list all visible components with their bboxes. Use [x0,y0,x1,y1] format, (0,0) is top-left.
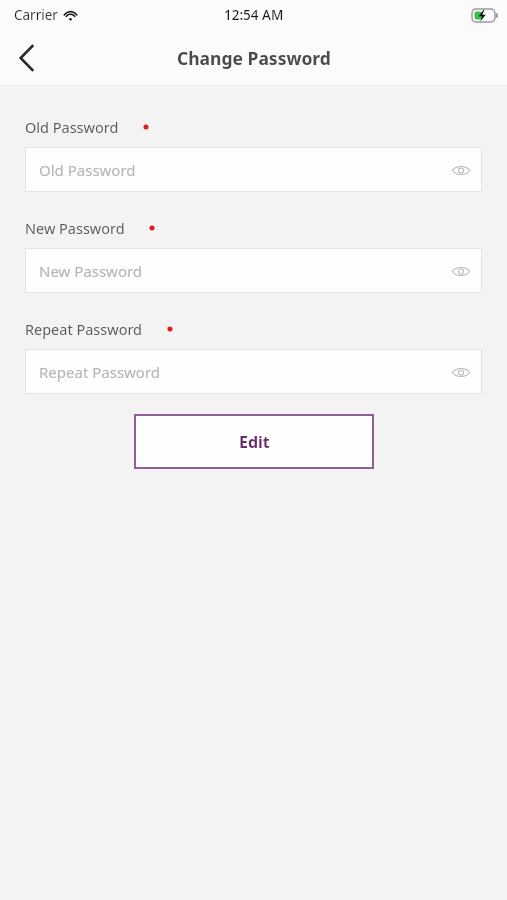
button[interactable]: Back [0,32,52,84]
staticText: Carrier [14,6,58,24]
staticText: 12:54 AM [224,6,284,24]
button[interactable]: Repeat Password [25,349,482,394]
button[interactable]: Show password [440,149,482,191]
staticText: Repeat Password [39,362,161,382]
staticText: Edit [239,431,270,453]
button[interactable]: Show password [440,351,482,393]
button[interactable]: New Password [25,248,482,293]
staticText: New Password [25,218,125,238]
staticText: Change Password [177,46,331,70]
button[interactable]: Edit [134,414,374,469]
staticText: New Password [39,261,143,281]
staticText: Old Password [25,117,119,137]
staticText: Repeat Password [25,319,143,339]
button[interactable]: Show password [440,250,482,292]
staticText: Old Password [39,160,136,180]
button[interactable]: Old Password [25,147,482,192]
